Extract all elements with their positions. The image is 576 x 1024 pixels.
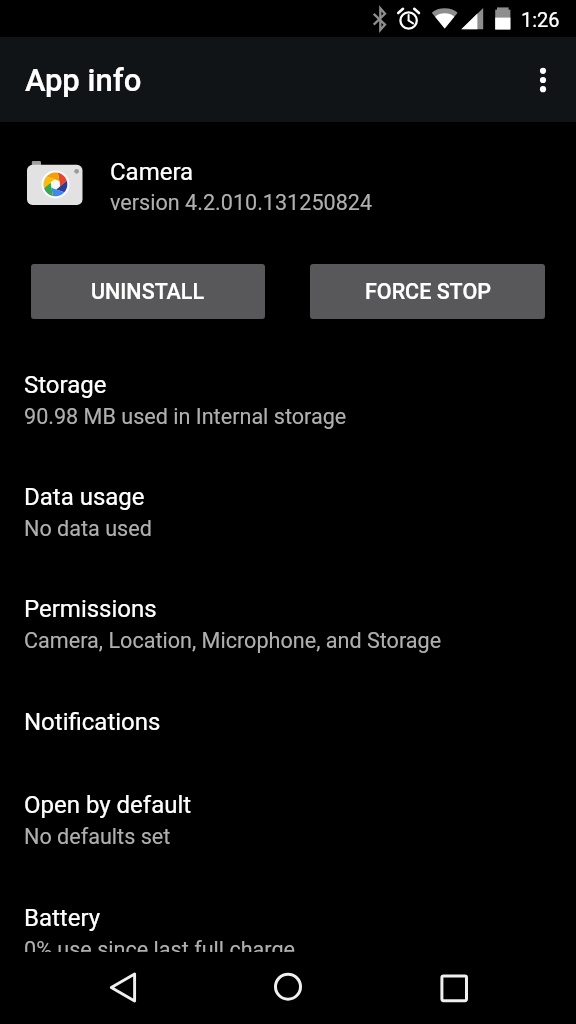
staticText: Battery (24, 904, 101, 932)
button[interactable]: Camera (0, 140, 576, 220)
button[interactable]: Storage (0, 371, 576, 483)
button[interactable]: UNINSTALL (31, 264, 265, 319)
staticText: FORCE STOP (365, 279, 491, 304)
staticText: Camera, Location, Microphone, and Storag… (24, 628, 442, 653)
button[interactable]: Battery (0, 904, 576, 1016)
button[interactable]: Notifications (0, 708, 576, 792)
button[interactable]: Open by default (0, 791, 576, 903)
staticText: Storage (24, 371, 107, 399)
button[interactable]: Permissions (0, 595, 576, 707)
staticText: 90.98 MB used in Internal storage (24, 404, 347, 429)
staticText: Camera (110, 158, 194, 186)
staticText: No defaults set (24, 824, 171, 849)
button[interactable]: Home (258, 952, 318, 1012)
staticText: 0% use since last full charge (24, 937, 296, 962)
button[interactable]: Recent apps (424, 952, 484, 1012)
staticText: App info (25, 62, 142, 98)
staticText: Notifications (24, 708, 161, 736)
staticText: No data used (24, 516, 152, 541)
staticText: Permissions (24, 595, 157, 623)
button[interactable]: Back (93, 952, 153, 1012)
button[interactable]: FORCE STOP (310, 264, 545, 319)
staticText: Data usage (24, 483, 145, 511)
button[interactable]: More options (517, 54, 569, 106)
staticText: UNINSTALL (91, 279, 205, 304)
staticText: Open by default (24, 791, 192, 819)
button[interactable]: Data usage (0, 483, 576, 595)
staticText: version 4.2.010.131250824 (110, 190, 373, 215)
staticText: 1:26 (521, 8, 560, 31)
